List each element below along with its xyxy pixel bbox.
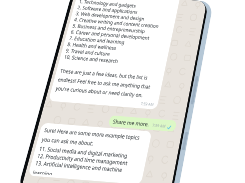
- staticText: Sure! Here are some more example topics …: [35, 80, 154, 183]
- staticText: 9. Travel and culture: [63, 27, 114, 77]
- button[interactable]: Sure! Here are some more example topics …: [7, 71, 174, 183]
- staticText: 10. Science and research: [61, 29, 121, 88]
- other: Volume: [178, 74, 211, 106]
- staticText: Sure! Here are some example topics you c…: [80, 0, 177, 44]
- button[interactable]: Sure! Here are some example topics you c…: [4, 0, 226, 158]
- staticText: 13. Artificial intelligence and machine …: [27, 112, 146, 183]
- staticText: 7. Education and learning: [66, 10, 128, 70]
- staticText: 11. Social media and digital marketing: [36, 105, 132, 183]
- staticText: 3. Web development and design: [73, 0, 148, 52]
- button[interactable]: Share me more.: [103, 85, 182, 162]
- staticText: 1. Technology and gadgets: [76, 0, 139, 34]
- staticText: 7:59 AM: [149, 116, 169, 135]
- staticText: 2. Software and applications: [74, 0, 141, 42]
- staticText: 12. Productivity and time management: [34, 111, 131, 183]
- staticText: 8. Health and wellness: [64, 19, 119, 73]
- staticText: These are just a few ideas, but the list…: [45, 22, 170, 145]
- staticText: 6. Career and personal development: [68, 0, 153, 76]
- staticText: 4. Creative writing and content creation: [71, 0, 163, 67]
- staticText: Share me more.: [110, 101, 153, 144]
- other: Power: [174, 130, 196, 152]
- staticText: 7:59 AM: [138, 95, 157, 113]
- staticText: 5. Business and entrepreneurship: [69, 0, 149, 67]
